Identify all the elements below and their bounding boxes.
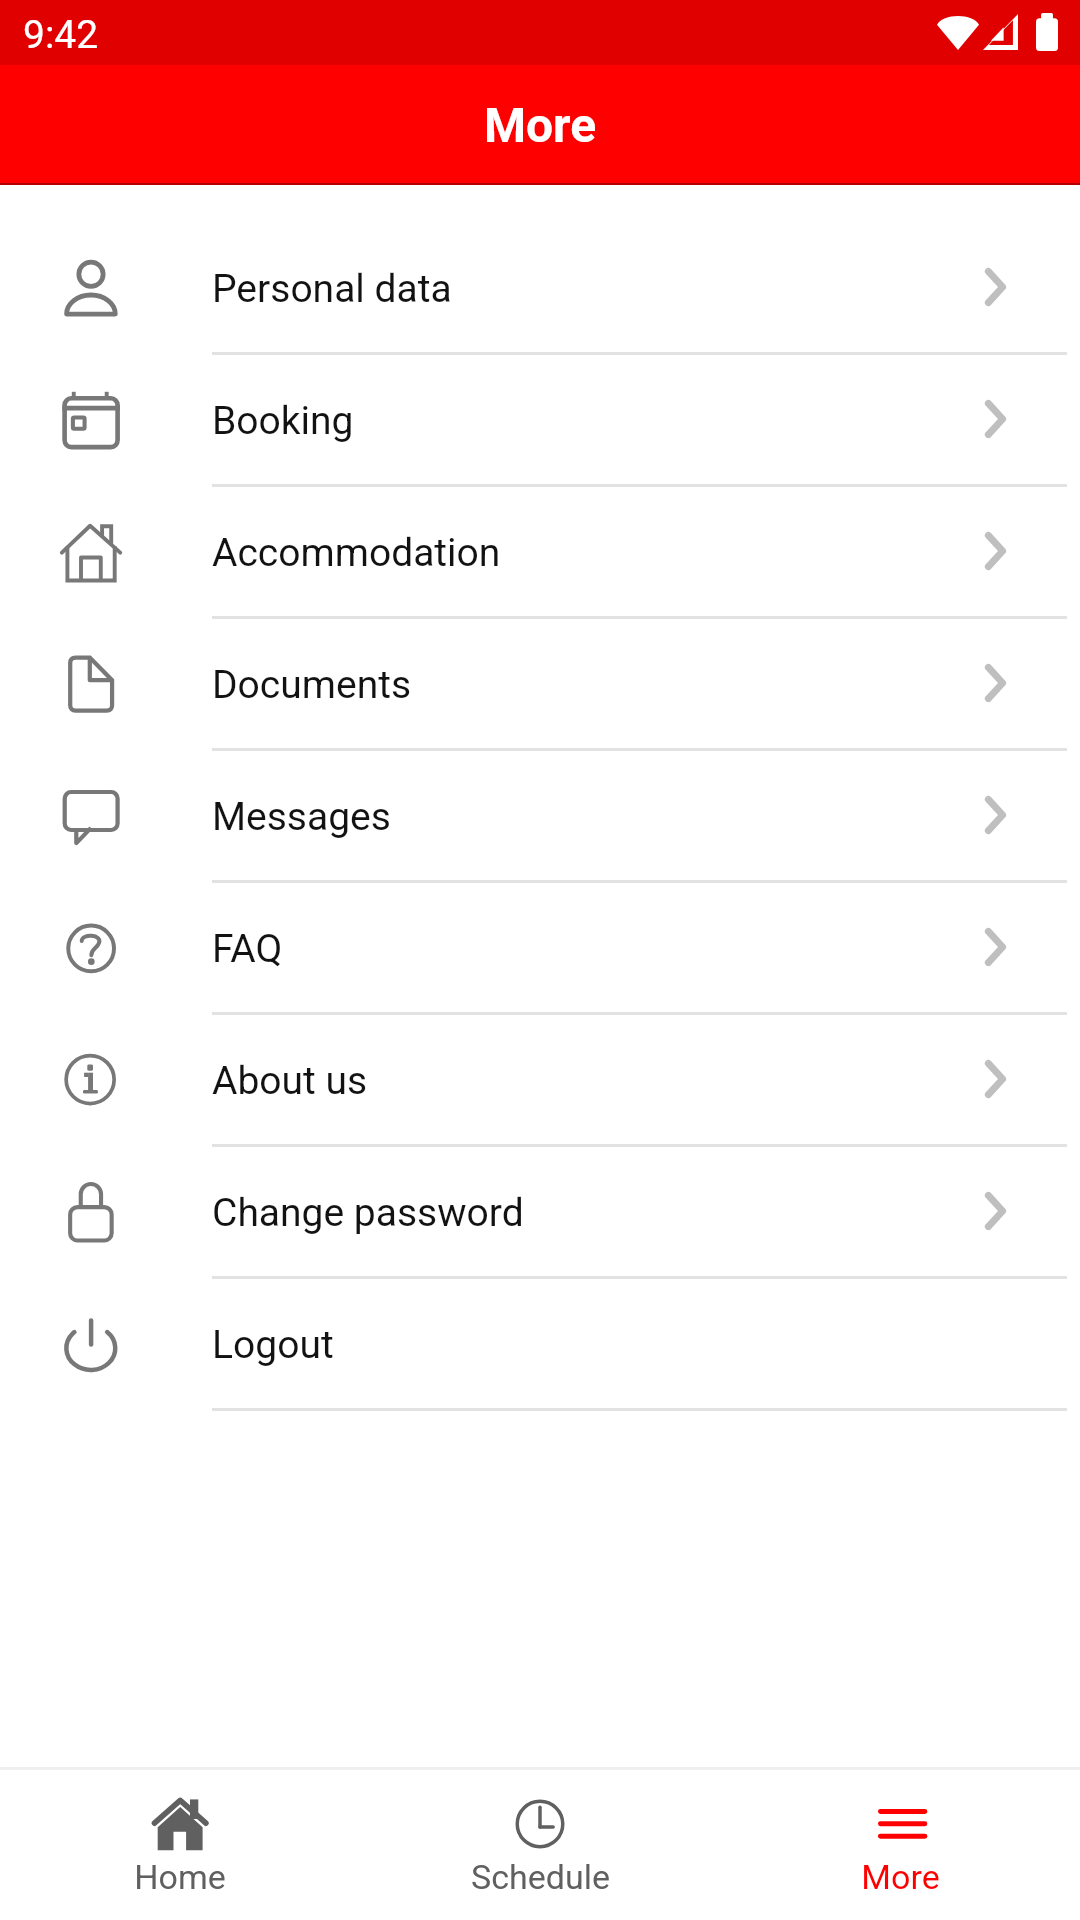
button[interactable]: Documents [0,619,1080,751]
button[interactable]: Accommodation [0,487,1080,619]
staticText: About us [212,1058,368,1104]
button[interactable]: Messages [0,751,1080,883]
button[interactable]: Schedule [360,1770,720,1897]
staticText: More [484,97,597,153]
staticText: Change password [212,1190,524,1236]
button[interactable]: Change password [0,1147,1080,1279]
button[interactable]: More [720,1770,1080,1897]
staticText: Messages [212,794,391,840]
button[interactable]: Booking [0,355,1080,487]
staticText: Personal data [212,266,452,312]
staticText: Logout [212,1322,334,1368]
staticText: Accommodation [212,530,501,576]
staticText: 9:42 [23,12,99,58]
staticText: Documents [212,662,412,708]
staticText: More [861,1857,940,1897]
staticText: FAQ [212,926,283,972]
button[interactable]: FAQ [0,883,1080,1015]
button[interactable]: Home [0,1770,360,1897]
staticText: Booking [212,398,354,444]
button[interactable]: Logout [0,1279,1080,1411]
button[interactable]: About us [0,1015,1080,1147]
staticText: Home [134,1857,226,1897]
staticText: Schedule [471,1857,610,1897]
button[interactable]: Personal data [0,223,1080,355]
